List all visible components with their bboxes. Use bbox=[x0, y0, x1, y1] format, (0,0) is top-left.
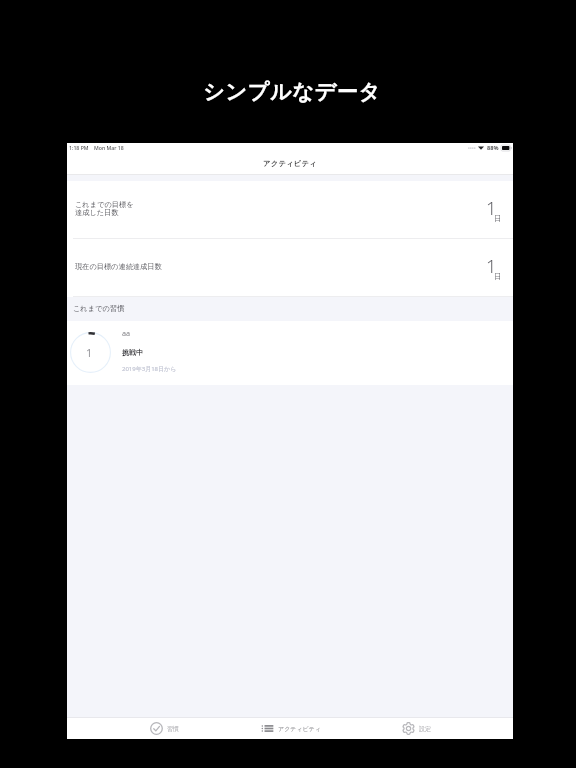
staticText: 88% bbox=[487, 144, 499, 152]
button[interactable]: 設定 bbox=[388, 717, 444, 739]
staticText: 1 bbox=[86, 345, 93, 360]
staticText: これまでの習慣 bbox=[73, 304, 125, 313]
button[interactable]: これまでの目標を 達成した日数 bbox=[67, 181, 513, 239]
button[interactable]: 現在の目標の連続達成日数 bbox=[67, 239, 513, 297]
staticText: 1 bbox=[486, 195, 497, 220]
staticText: 1 bbox=[486, 253, 497, 278]
staticText: 日 bbox=[494, 272, 502, 281]
staticText: 1:18 PM bbox=[69, 144, 89, 151]
staticText: 習慣 bbox=[167, 725, 179, 733]
staticText: アクティビティ bbox=[278, 725, 321, 733]
staticText: 現在の目標の連続達成日数 bbox=[75, 262, 162, 271]
staticText: シンプルなデータ bbox=[203, 79, 381, 105]
staticText: aa bbox=[122, 328, 131, 338]
button[interactable]: アクティビティ bbox=[233, 717, 349, 739]
staticText: 挑戦中 bbox=[122, 348, 143, 357]
staticText: Mon Mar 18 bbox=[94, 144, 124, 151]
staticText: 日 bbox=[494, 214, 502, 223]
staticText: これまでの目標を 達成した日数 bbox=[75, 200, 134, 217]
staticText: 2019年3月18日から bbox=[122, 365, 177, 373]
button[interactable]: 習慣 bbox=[136, 717, 192, 739]
staticText: 設定 bbox=[419, 725, 431, 733]
staticText: アクティビティ bbox=[263, 159, 317, 168]
button[interactable]: 1 bbox=[67, 321, 513, 385]
